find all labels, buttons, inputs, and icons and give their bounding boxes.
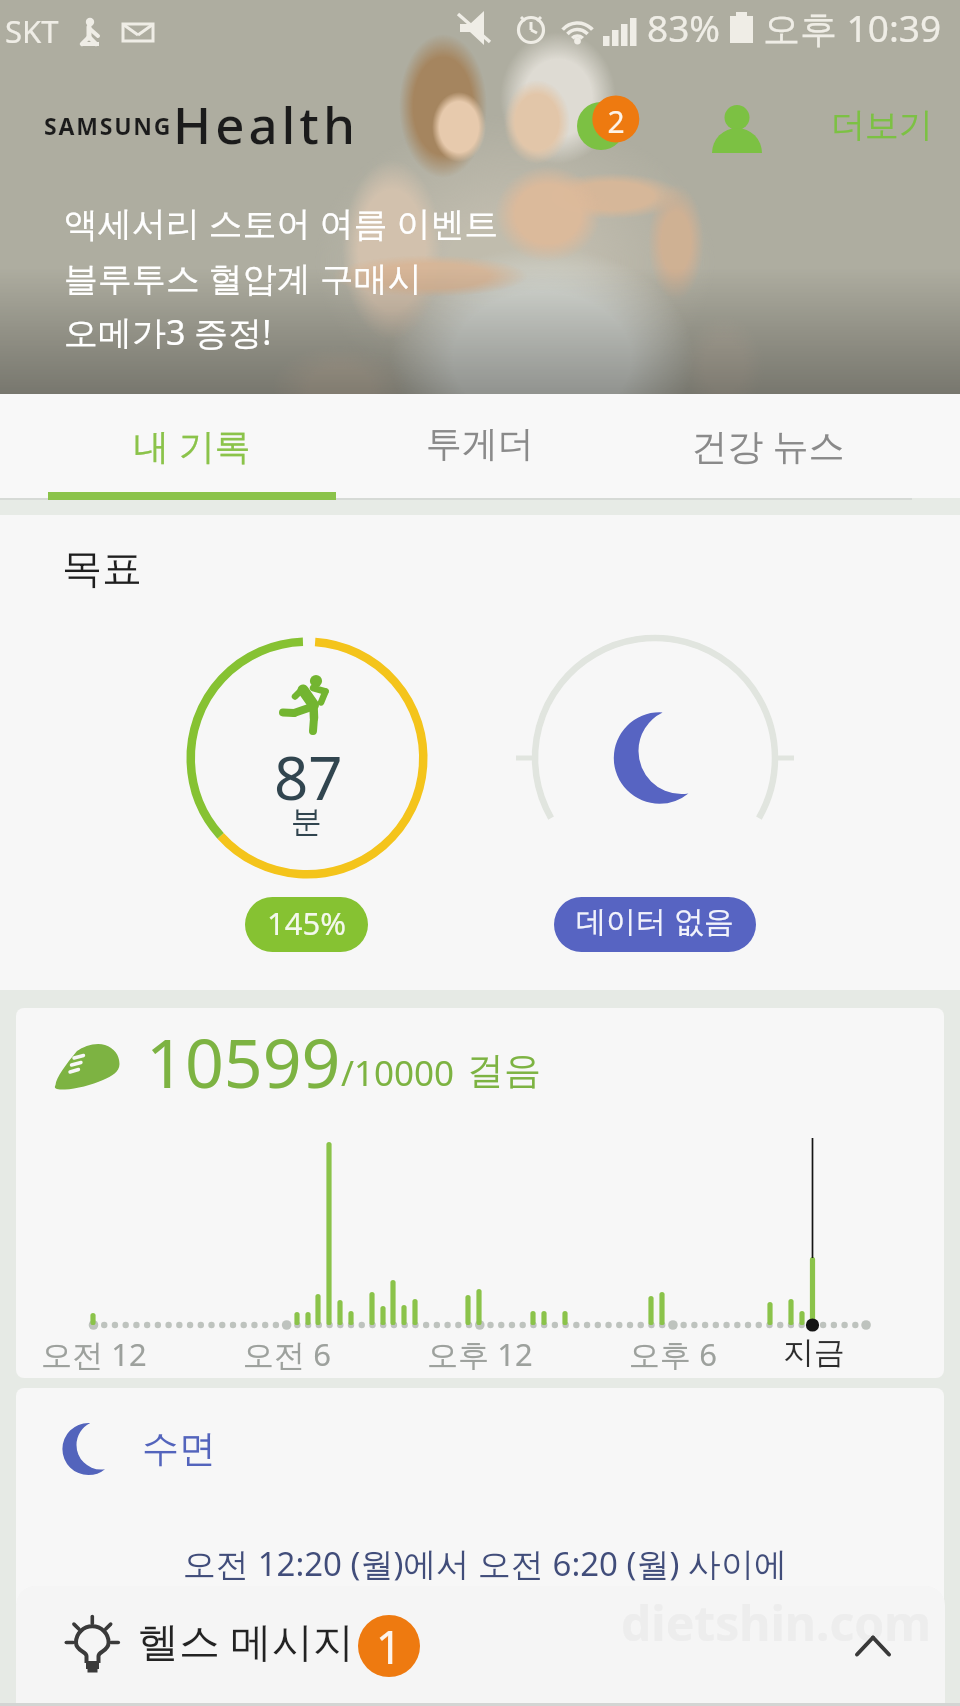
staticText: 87 xyxy=(274,736,343,818)
staticText: 83% xyxy=(647,2,721,52)
staticText: 수면 xyxy=(142,1425,216,1472)
staticText: 오전 12 xyxy=(0,1333,194,1383)
staticText: SAMSUNG xyxy=(44,110,173,141)
staticText: 145% xyxy=(245,902,368,952)
staticText: dietshin.com xyxy=(621,1590,932,1655)
button[interactable]: 데이터 없음 xyxy=(554,897,756,952)
button[interactable]: 내 기록 xyxy=(48,418,336,498)
staticText: 더보기 xyxy=(826,104,938,152)
button[interactable]: Sleep goal xyxy=(534,637,776,879)
staticText: 목표 xyxy=(62,543,142,593)
button[interactable]: 145% xyxy=(245,897,368,952)
button[interactable]: 투게더 xyxy=(336,418,624,498)
button[interactable] xyxy=(16,1388,944,1688)
staticText: 액세서리 스토어 여름 이벤트 xyxy=(64,200,499,246)
staticText: 건강 뉴스 xyxy=(624,421,912,501)
staticText: /10000 xyxy=(341,1049,455,1097)
staticText: 지금 xyxy=(714,1333,914,1383)
staticText: 오후 6 xyxy=(573,1333,773,1383)
staticText: 10599 xyxy=(146,1015,341,1108)
staticText: 2 xyxy=(592,101,640,149)
button[interactable] xyxy=(16,1008,944,1378)
staticText: 헬스 메시지 xyxy=(138,1612,354,1668)
button[interactable]: dietshin.com xyxy=(16,1586,945,1706)
staticText: 1 xyxy=(358,1615,420,1677)
staticText: 투게더 xyxy=(336,421,624,501)
button[interactable]: 더보기 xyxy=(826,98,938,146)
button[interactable]: Notifications xyxy=(592,95,640,143)
staticText: 오메가3 증정! xyxy=(64,309,272,355)
button[interactable]: Profile xyxy=(706,92,768,154)
staticText: 블루투스 혈압계 구매시 xyxy=(64,255,422,301)
staticText: SKT xyxy=(5,10,59,52)
staticText: 데이터 없음 xyxy=(554,900,756,952)
button[interactable]: 건강 뉴스 xyxy=(624,418,912,498)
staticText: 분 xyxy=(291,802,322,841)
staticText: Health xyxy=(173,89,359,158)
button[interactable]: Collapse health messages xyxy=(841,1612,937,1680)
staticText: 오전 6 xyxy=(187,1333,387,1383)
staticText: 오후 10:39 xyxy=(763,2,942,53)
button[interactable]: Samsung Health promotion banner xyxy=(0,0,960,394)
button[interactable]: Exercise goal xyxy=(186,637,428,879)
staticText: 오후 12 xyxy=(380,1333,580,1383)
staticText: 오전 12:20 (월)에서 오전 6:20 (월) 사이에 xyxy=(35,1541,935,1594)
staticText: 걸음 xyxy=(467,1047,541,1094)
staticText: 내 기록 xyxy=(48,421,336,501)
